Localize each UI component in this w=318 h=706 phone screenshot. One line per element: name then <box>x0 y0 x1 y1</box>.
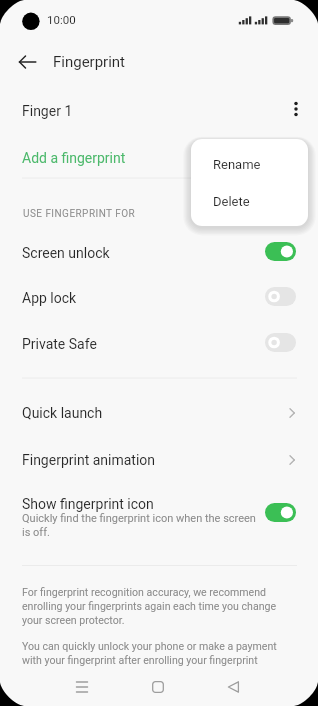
staticText: Quick launch <box>22 405 103 421</box>
button[interactable]: Screen unlock <box>0 230 318 275</box>
button[interactable]: Fingerprint animation <box>0 437 318 482</box>
staticText: Add a fingerprint <box>22 150 126 166</box>
button[interactable]: Back <box>11 46 43 78</box>
staticText: For fingerprint recognition accuracy, we… <box>22 586 280 626</box>
button[interactable]: Delete <box>191 183 308 220</box>
button[interactable]: App lock <box>0 275 318 320</box>
staticText: Show fingerprint icon <box>22 496 154 512</box>
button[interactable]: Quick launch <box>0 390 318 435</box>
button[interactable]: Home <box>141 670 175 704</box>
staticText: Finger 1 <box>22 103 73 119</box>
button[interactable]: On <box>265 242 296 261</box>
staticText: Delete <box>213 194 250 209</box>
button[interactable]: Back <box>217 670 251 704</box>
button[interactable]: Finger 1 <box>0 89 318 133</box>
staticText: Fingerprint <box>53 53 126 71</box>
button[interactable]: On <box>265 503 296 522</box>
staticText: Quickly find the fingerprint icon when t… <box>22 512 256 539</box>
staticText: Fingerprint animation <box>22 452 156 468</box>
staticText: App lock <box>22 290 77 306</box>
staticText: Private Safe <box>22 336 97 352</box>
button[interactable]: Private Safe <box>0 321 318 366</box>
staticText: You can quickly unlock your phone or mak… <box>22 640 280 666</box>
button[interactable]: Off <box>265 287 296 306</box>
staticText: 10:00 <box>47 13 76 26</box>
staticText: USE FINGERPRINT FOR <box>23 208 136 220</box>
button[interactable]: Show fingerprint icon <box>0 484 318 544</box>
button[interactable]: Rename <box>191 146 308 183</box>
staticText: Screen unlock <box>22 245 110 261</box>
button[interactable]: More options <box>281 94 311 124</box>
staticText: Rename <box>213 157 261 172</box>
button[interactable]: Off <box>265 333 296 352</box>
button[interactable]: Add a fingerprint <box>0 136 318 180</box>
button[interactable]: Recents <box>65 670 99 704</box>
